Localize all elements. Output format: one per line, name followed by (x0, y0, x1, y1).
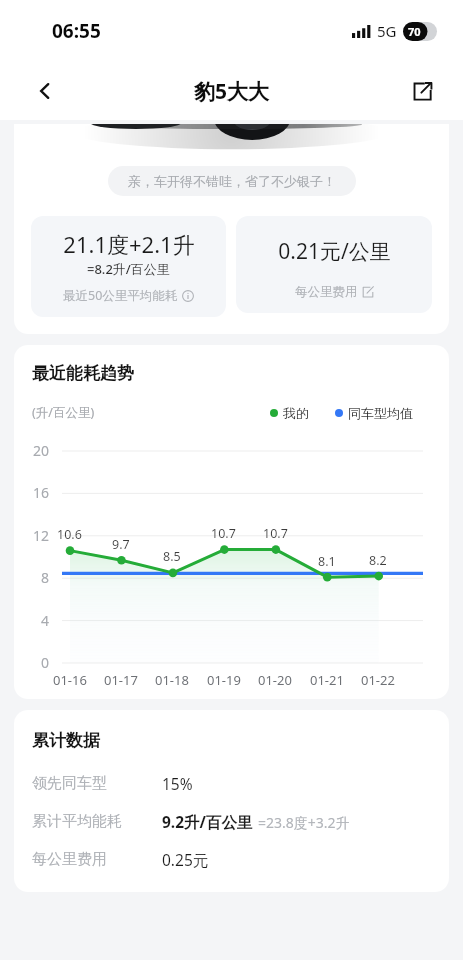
staticText: 9.2升/百公里 (162, 811, 253, 832)
staticText: 亲，车开得不错哇，省了不少银子！ (128, 173, 336, 189)
button[interactable]: Back (26, 72, 64, 110)
staticText: 16 (33, 483, 50, 502)
staticText: 我的 (283, 405, 309, 421)
staticText: 01-22 (361, 671, 395, 689)
staticText: 70 (408, 24, 421, 39)
staticText: 4 (41, 611, 50, 630)
staticText: 每公里费用 (32, 850, 107, 869)
staticText: 06:55 (52, 18, 101, 44)
staticText: 0 (41, 653, 50, 672)
staticText: 最近能耗趋势 (32, 363, 134, 384)
staticText: 01-16 (53, 671, 87, 689)
staticText: 每公里费用 (295, 284, 358, 300)
button[interactable]: 21.1度+2.1升 (31, 216, 226, 317)
staticText: 最近50公里平均能耗 (63, 287, 178, 304)
staticText: 12 (33, 526, 50, 545)
staticText: 0.25元 (162, 849, 209, 870)
staticText: 0.21元/公里 (278, 237, 391, 266)
staticText: 累计数据 (32, 730, 100, 751)
staticText: 15% (162, 773, 193, 794)
staticText: 01-17 (104, 671, 138, 689)
staticText: 10.7 (211, 525, 236, 542)
staticText: 01-19 (207, 671, 241, 689)
staticText: 8.2 (369, 552, 387, 569)
staticText: 累计平均能耗 (32, 812, 122, 831)
staticText: 9.7 (112, 536, 130, 553)
staticText: 01-20 (258, 671, 292, 689)
staticText: =8.2升/百公里 (87, 260, 170, 278)
staticText: 01-21 (310, 671, 344, 689)
staticText: 8.5 (163, 548, 181, 565)
staticText: 8 (41, 568, 50, 587)
button[interactable]: 领先同车型 (14, 773, 449, 794)
staticText: (升/百公里) (32, 404, 95, 421)
staticText: 10.6 (57, 526, 82, 543)
staticText: 5G (377, 21, 397, 41)
staticText: =23.8度+3.2升 (258, 813, 350, 832)
staticText: 8.1 (318, 553, 336, 570)
staticText: 领先同车型 (32, 774, 107, 793)
button[interactable]: Share (403, 72, 441, 110)
button[interactable]: 每公里费用 (14, 849, 449, 870)
staticText: 10.7 (263, 525, 288, 542)
staticText: 豹5大大 (194, 77, 270, 106)
button[interactable]: 0.21元/公里 (236, 216, 432, 313)
staticText: 21.1度+2.1升 (63, 229, 195, 259)
staticText: 01-18 (155, 671, 189, 689)
staticText: 同车型均值 (348, 405, 413, 421)
staticText: 20 (33, 441, 50, 460)
button[interactable]: 累计平均能耗 (14, 811, 449, 832)
